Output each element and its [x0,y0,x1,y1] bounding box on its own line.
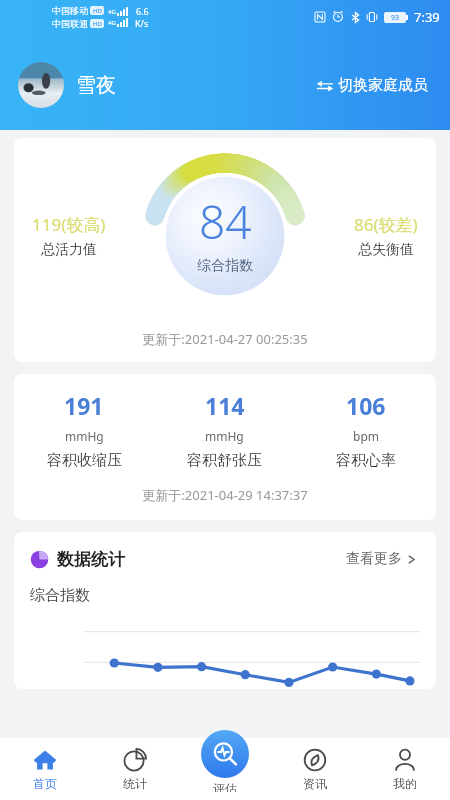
staticText: 中国移动 [52,5,88,16]
staticText: HD [93,20,102,28]
button[interactable]: 84 [14,138,436,362]
staticText: 4G [108,8,116,16]
staticText: 容积心率 [336,451,396,470]
staticText: 评估 [213,781,237,792]
staticText: K/s [135,17,149,29]
staticText: 119(较高) [32,213,106,236]
button[interactable]: 查看更多 [342,546,420,572]
staticText: 更新于:2021-04-27 00:25:35 [14,330,436,348]
staticText: bpm [353,428,379,444]
staticText: 综合指数 [197,257,253,275]
staticText: 7:39 [414,8,440,26]
staticText: 114 [205,390,245,421]
button[interactable]: 191 [14,374,436,520]
staticText: mmHg [65,428,104,444]
button[interactable]: 统计 [90,738,180,800]
button[interactable]: Profile avatar [18,62,64,108]
staticText: 查看更多 [346,550,402,568]
staticText: 首页 [33,776,57,791]
button[interactable]: 我的 [360,738,450,800]
staticText: 6.6 [136,5,149,17]
other: 评估 Assessment [201,730,249,778]
button[interactable]: 评估 Assessment [201,738,249,800]
staticText: 容积舒张压 [187,451,262,470]
staticText: 191 [64,390,104,421]
staticText: 资讯 [303,776,327,791]
staticText: 容积收缩压 [47,451,122,470]
staticText: 综合指数 [30,586,90,605]
staticText: 93 [391,13,400,23]
staticText: 雪夜 [76,73,116,98]
staticText: 中国联通 [52,18,88,29]
button[interactable]: 资讯 [270,738,360,800]
staticText: 总活力值 [41,241,97,259]
staticText: 106 [346,390,386,421]
staticText: 更新于:2021-04-29 14:37:37 [14,486,436,504]
staticText: 86(较差) [354,213,418,236]
button[interactable]: 切换家庭成员 [312,72,432,99]
staticText: 我的 [393,776,417,791]
staticText: 数据统计 [57,549,125,570]
button[interactable]: 首页 [0,738,90,800]
staticText: 84 [199,190,252,253]
staticText: mmHg [205,428,244,444]
staticText: 4G [108,19,116,27]
staticText: 统计 [123,776,147,791]
staticText: 切换家庭成员 [338,76,428,95]
staticText: 总失衡值 [358,241,414,259]
staticText: HD [93,7,102,15]
